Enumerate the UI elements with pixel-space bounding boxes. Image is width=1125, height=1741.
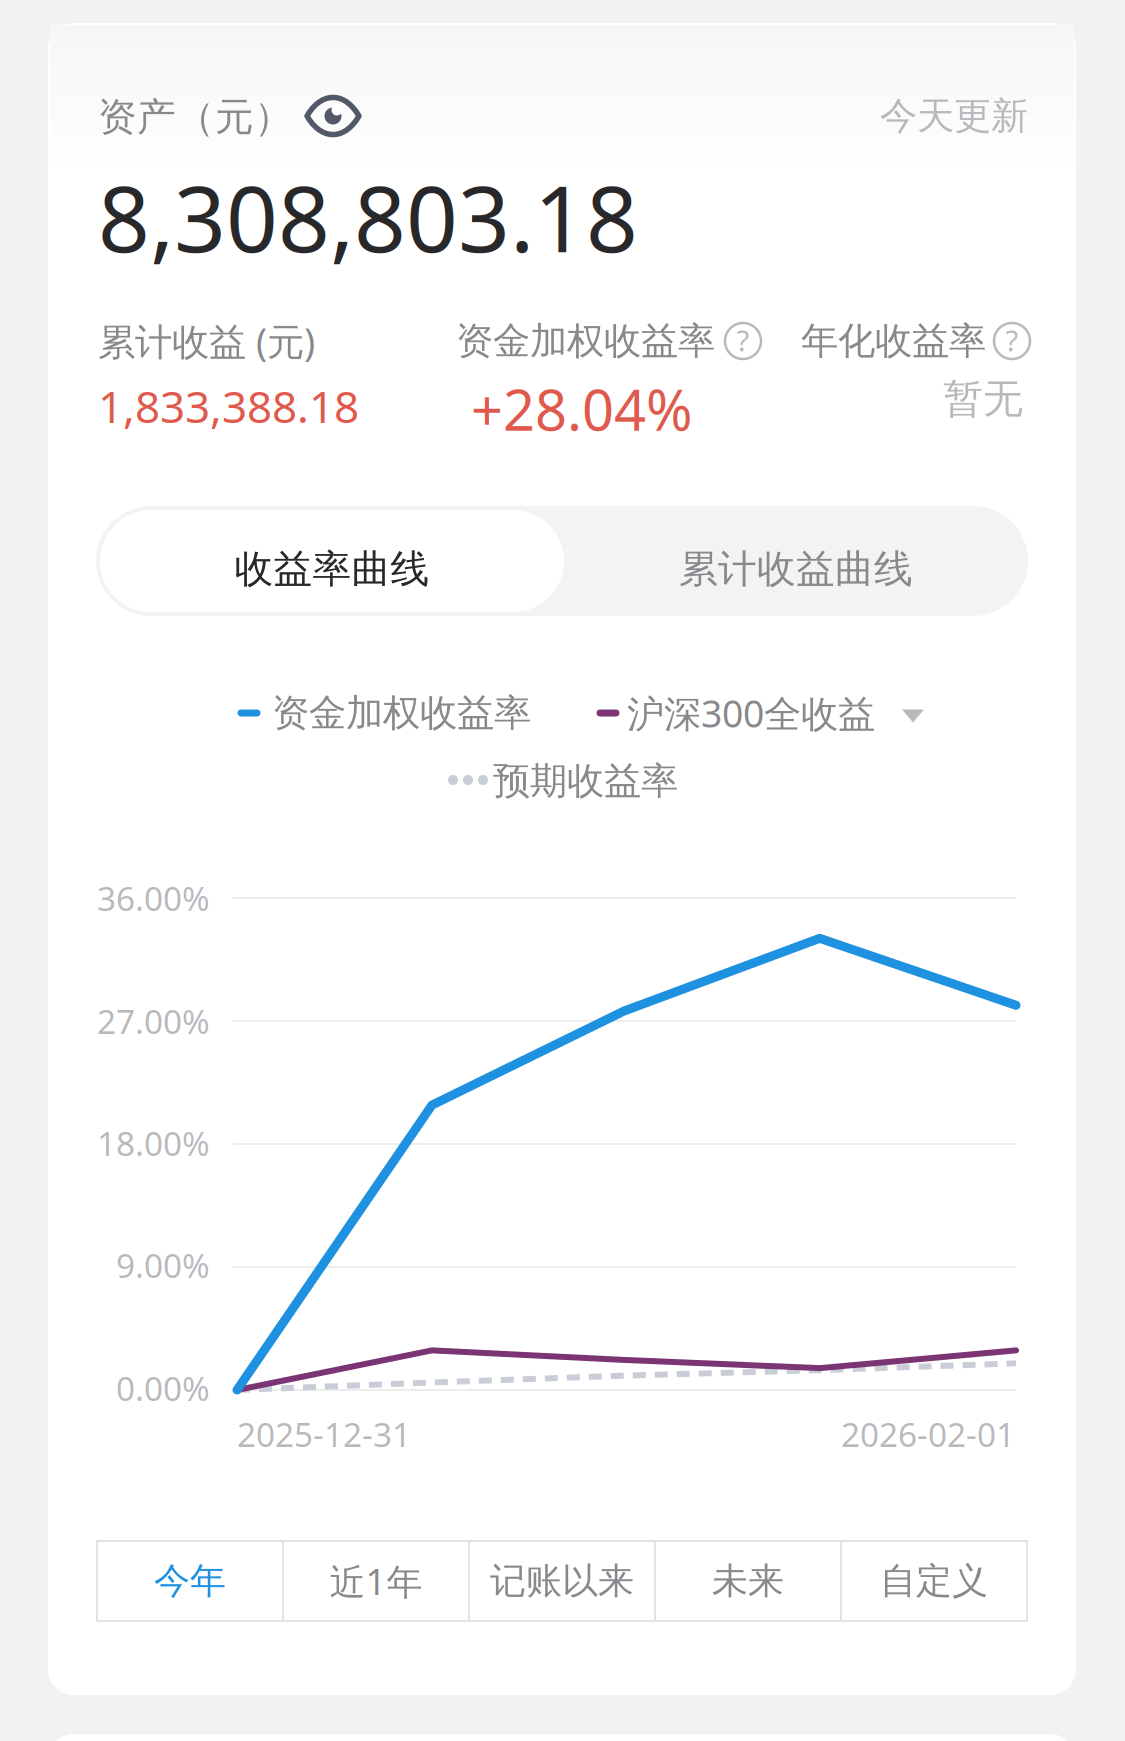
- staticText: 资金加权收益率: [456, 318, 715, 364]
- staticText: 累计收益曲线: [679, 545, 913, 593]
- staticText: 年化收益率: [801, 318, 986, 364]
- staticText: 今天更新: [880, 93, 1028, 139]
- button[interactable]: 近1年: [283, 1540, 469, 1621]
- staticText: 0.00%: [116, 1366, 210, 1410]
- staticText: 27.00%: [97, 999, 210, 1043]
- staticText: 暂无: [943, 374, 1023, 423]
- staticText: 未来: [712, 1559, 784, 1603]
- staticText: 资产（元）: [98, 93, 293, 141]
- staticText: 1,833,388.18: [98, 377, 359, 435]
- button[interactable]: 未来: [655, 1540, 841, 1621]
- staticText: 36.00%: [97, 876, 210, 920]
- button[interactable]: 今年: [97, 1540, 283, 1621]
- staticText: 预期收益率: [493, 758, 678, 804]
- button[interactable]: Toggle balance visibility: [304, 96, 362, 136]
- staticText: 自定义: [880, 1559, 988, 1603]
- staticText: 9.00%: [116, 1243, 210, 1287]
- staticText: 18.00%: [97, 1121, 210, 1165]
- staticText: 2025-12-31: [237, 1412, 411, 1456]
- staticText: 沪深300全收益: [627, 688, 875, 738]
- button[interactable]: 累计收益曲线: [564, 514, 1028, 624]
- button[interactable]: 自定义: [841, 1540, 1027, 1621]
- staticText: 今年: [154, 1559, 226, 1603]
- staticText: 资金加权收益率: [272, 690, 531, 736]
- staticText: 2026-02-01: [841, 1412, 1015, 1456]
- staticText: 累计收益 (元): [98, 316, 315, 366]
- staticText: 收益率曲线: [234, 545, 429, 593]
- button[interactable]: 收益率曲线: [100, 514, 564, 624]
- staticText: ?: [736, 320, 749, 359]
- staticText: ?: [1005, 320, 1018, 359]
- button[interactable]: Choose benchmark: [889, 692, 937, 740]
- staticText: 记账以来: [490, 1559, 634, 1603]
- staticText: +28.04%: [471, 372, 693, 446]
- staticText: 近1年: [329, 1557, 422, 1605]
- button[interactable]: 记账以来: [469, 1540, 655, 1621]
- staticText: 8,308,803.18: [98, 157, 638, 277]
